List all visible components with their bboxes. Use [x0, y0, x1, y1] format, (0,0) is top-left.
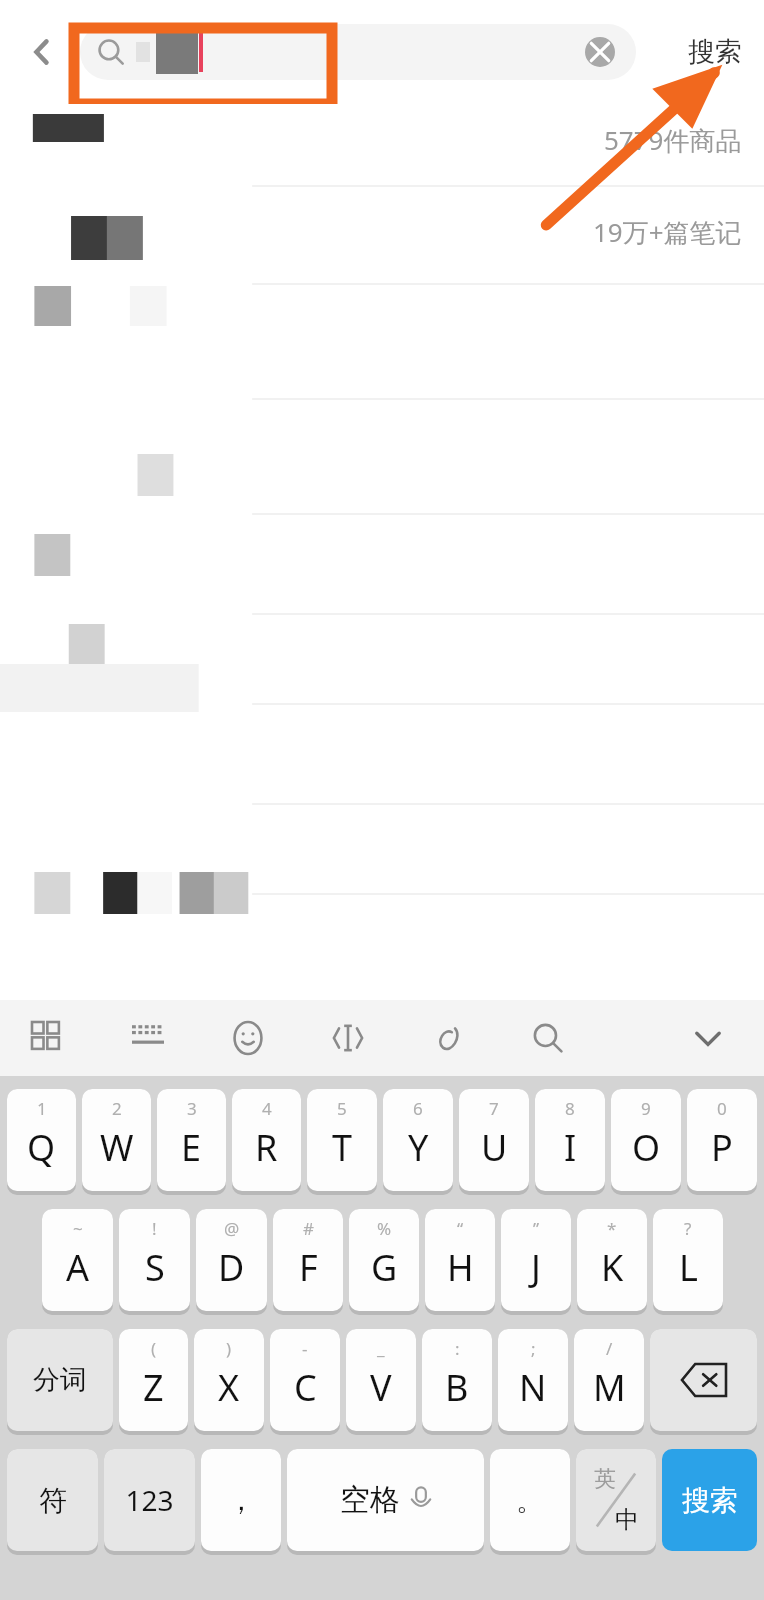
staticText: I — [564, 1123, 577, 1172]
button[interactable]: Keyboard — [122, 1012, 174, 1064]
button[interactable]: 0 — [687, 1089, 757, 1191]
staticText: 123 — [125, 1481, 174, 1519]
button[interactable]: 空格 — [287, 1449, 484, 1551]
button[interactable]: * — [577, 1209, 647, 1311]
button[interactable]: @ — [196, 1209, 267, 1311]
button[interactable]: 搜索 — [662, 1449, 757, 1551]
staticText: G — [371, 1243, 398, 1292]
button[interactable]: Emoji — [222, 1012, 274, 1064]
button[interactable]: ， — [201, 1449, 281, 1551]
button[interactable]: 3 — [157, 1089, 226, 1191]
staticText: 5779件商品 — [604, 122, 742, 158]
staticText: ~ — [73, 1217, 83, 1240]
button[interactable]: 8 — [535, 1089, 605, 1191]
staticText: _ — [377, 1337, 385, 1360]
button[interactable]: ” — [501, 1209, 571, 1311]
staticText: 中 — [615, 1505, 639, 1535]
staticText: Y — [408, 1123, 429, 1172]
staticText: E — [181, 1123, 202, 1172]
button[interactable]: Search — [522, 1012, 574, 1064]
staticText: / — [606, 1337, 613, 1360]
staticText: ; — [531, 1337, 536, 1360]
staticText: 7 — [489, 1097, 499, 1120]
staticText: ( — [151, 1337, 157, 1360]
staticText: 分词 — [33, 1363, 87, 1397]
button[interactable]: Hide keyboard — [682, 1012, 734, 1064]
staticText: ! — [152, 1217, 157, 1240]
button[interactable]: 2 — [82, 1089, 151, 1191]
button[interactable]: ~ — [42, 1209, 113, 1311]
button[interactable]: Cursor — [322, 1012, 374, 1064]
staticText: B — [445, 1363, 469, 1412]
button[interactable]: 4 — [232, 1089, 301, 1191]
staticText: * — [607, 1217, 617, 1240]
button[interactable]: ? — [653, 1209, 723, 1311]
button[interactable]: ! — [119, 1209, 190, 1311]
button[interactable]: Clear — [580, 32, 620, 72]
button[interactable]: 英 — [576, 1449, 656, 1551]
staticText: ? — [684, 1217, 692, 1240]
staticText: 19万+篇笔记 — [593, 214, 742, 250]
button[interactable]: Grid — [22, 1012, 74, 1064]
staticText: ” — [533, 1217, 540, 1240]
button[interactable]: / — [574, 1329, 644, 1431]
button[interactable]: 7 — [459, 1089, 529, 1191]
staticText: C — [294, 1363, 317, 1412]
staticText: 搜索 — [688, 35, 742, 69]
staticText: % — [377, 1217, 392, 1240]
button[interactable]: 搜索 — [680, 27, 750, 77]
button[interactable]: ( — [119, 1329, 188, 1431]
button[interactable]: Back — [14, 24, 70, 80]
staticText: 英 — [594, 1465, 616, 1493]
staticText: U — [481, 1123, 508, 1172]
staticText: F — [299, 1243, 318, 1292]
button[interactable]: 123 — [104, 1449, 195, 1551]
staticText: X — [218, 1363, 240, 1412]
button[interactable]: ) — [194, 1329, 264, 1431]
button[interactable]: ; — [498, 1329, 568, 1431]
staticText: # — [303, 1217, 314, 1240]
staticText: 3 — [187, 1097, 197, 1120]
staticText: J — [531, 1243, 541, 1292]
button[interactable]: “ — [425, 1209, 495, 1311]
staticText: @ — [224, 1217, 240, 1240]
staticText: 搜索 — [682, 1483, 738, 1518]
button[interactable]: 。 — [490, 1449, 570, 1551]
staticText: ， — [227, 1483, 255, 1518]
staticText: - — [302, 1337, 308, 1360]
button[interactable]: - — [270, 1329, 340, 1431]
staticText: V — [370, 1363, 392, 1412]
button[interactable]: Backspace — [650, 1329, 757, 1431]
staticText: 2 — [112, 1097, 122, 1120]
staticText: M — [593, 1363, 626, 1412]
button[interactable]: _ — [346, 1329, 416, 1431]
staticText: 。 — [516, 1483, 544, 1518]
button[interactable]: Clear — [80, 24, 636, 80]
button[interactable]: % — [349, 1209, 419, 1311]
button[interactable]: 分词 — [7, 1329, 113, 1431]
staticText: P — [711, 1123, 733, 1172]
staticText: N — [519, 1363, 547, 1412]
staticText: W — [100, 1123, 134, 1172]
staticText: 6 — [413, 1097, 423, 1120]
staticText: H — [447, 1243, 474, 1292]
staticText: 9 — [641, 1097, 651, 1120]
button[interactable]: 5 — [307, 1089, 377, 1191]
button[interactable]: 6 — [383, 1089, 453, 1191]
button[interactable]: 符 — [7, 1449, 98, 1551]
button[interactable]: Attach — [422, 1012, 474, 1064]
staticText: 1 — [37, 1097, 47, 1120]
staticText: Z — [143, 1363, 164, 1412]
staticText: 4 — [262, 1097, 272, 1120]
button[interactable]: 1 — [7, 1089, 76, 1191]
button[interactable]: # — [273, 1209, 343, 1311]
staticText: 0 — [717, 1097, 727, 1120]
button[interactable]: : — [422, 1329, 492, 1431]
staticText: A — [66, 1243, 90, 1292]
staticText: 符 — [39, 1483, 67, 1518]
staticText: : — [455, 1337, 460, 1360]
staticText: T — [332, 1123, 353, 1172]
button[interactable]: 9 — [611, 1089, 681, 1191]
staticText: 8 — [565, 1097, 575, 1120]
staticText: ) — [226, 1337, 232, 1360]
